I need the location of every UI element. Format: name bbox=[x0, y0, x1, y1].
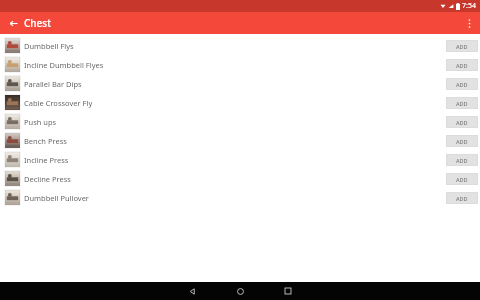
button[interactable]: ADD bbox=[446, 59, 478, 71]
staticText: ADD bbox=[456, 138, 468, 145]
button[interactable]: Parallel Bar Dips bbox=[0, 74, 480, 93]
button[interactable]: ADD bbox=[446, 173, 478, 185]
button[interactable]: ADD bbox=[446, 40, 478, 52]
staticText: Incline Dumbbell Flyes bbox=[24, 60, 446, 70]
staticText: Push ups bbox=[24, 117, 446, 127]
button[interactable]: ADD bbox=[446, 192, 478, 204]
button[interactable]: ADD bbox=[446, 154, 478, 166]
button[interactable]: ADD bbox=[446, 97, 478, 109]
button[interactable]: Decline Press bbox=[0, 169, 480, 188]
staticText: ADD bbox=[456, 157, 468, 164]
button[interactable]: ADD bbox=[446, 78, 478, 90]
button[interactable]: Incline Press bbox=[0, 150, 480, 169]
staticText: ADD bbox=[456, 62, 468, 69]
staticText: ADD bbox=[456, 195, 468, 202]
button[interactable]: Home bbox=[224, 282, 256, 300]
staticText: Dumbbell Pullover bbox=[24, 193, 446, 203]
staticText: Cable Crossover Fly bbox=[24, 98, 446, 108]
button[interactable]: Recents bbox=[272, 282, 304, 300]
staticText: Incline Press bbox=[24, 155, 446, 165]
button[interactable]: Bench Press bbox=[0, 131, 480, 150]
button[interactable]: ADD bbox=[446, 135, 478, 147]
staticText: ADD bbox=[456, 176, 468, 183]
staticText: Parallel Bar Dips bbox=[24, 79, 446, 89]
staticText: 7:54 bbox=[462, 1, 476, 11]
button[interactable]: Cable Crossover Fly bbox=[0, 93, 480, 112]
staticText: ADD bbox=[456, 81, 468, 88]
button[interactable]: Dumbbell Pullover bbox=[0, 188, 480, 207]
button[interactable]: Incline Dumbbell Flyes bbox=[0, 55, 480, 74]
staticText: Chest bbox=[24, 16, 52, 30]
button[interactable]: Push ups bbox=[0, 112, 480, 131]
staticText: ADD bbox=[456, 43, 468, 50]
staticText: ADD bbox=[456, 100, 468, 107]
staticText: ADD bbox=[456, 119, 468, 126]
button[interactable]: Back bbox=[6, 16, 20, 30]
staticText: Dumbbell Flys bbox=[24, 41, 446, 51]
button[interactable]: More options bbox=[462, 16, 476, 30]
button[interactable]: ADD bbox=[446, 116, 478, 128]
button[interactable]: Back bbox=[176, 282, 208, 300]
staticText: Bench Press bbox=[24, 136, 446, 146]
button[interactable]: Dumbbell Flys bbox=[0, 36, 480, 55]
staticText: Decline Press bbox=[24, 174, 446, 184]
